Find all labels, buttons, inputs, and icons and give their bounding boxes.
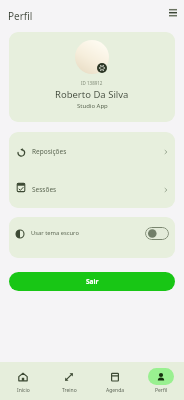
staticText: Sessões	[32, 185, 57, 194]
staticText: Usar tema escuro	[31, 229, 79, 237]
staticText: Sair	[86, 277, 99, 286]
staticText: Perfil	[155, 387, 168, 394]
staticText: Reposições	[32, 147, 67, 156]
button[interactable]: Agenda	[92, 362, 138, 400]
button[interactable]: Início	[0, 362, 46, 400]
staticText: Agenda	[106, 387, 125, 394]
button[interactable]: Treino	[46, 362, 92, 400]
button[interactable]: Reposições	[9, 132, 175, 170]
button[interactable]: Menu	[158, 6, 178, 26]
staticText: Início	[17, 387, 30, 394]
button[interactable]: Perfil	[138, 362, 184, 400]
staticText: Roberto Da Silva	[55, 88, 129, 101]
staticText: Studio App	[77, 102, 108, 110]
staticText: Perfil	[8, 9, 33, 23]
button[interactable]: Sessões	[9, 170, 175, 208]
button[interactable]: Usar tema escuro	[9, 217, 175, 258]
staticText: Treino	[62, 387, 77, 394]
button[interactable]: Sair	[9, 272, 175, 291]
staticText: ID 138912	[81, 80, 103, 86]
